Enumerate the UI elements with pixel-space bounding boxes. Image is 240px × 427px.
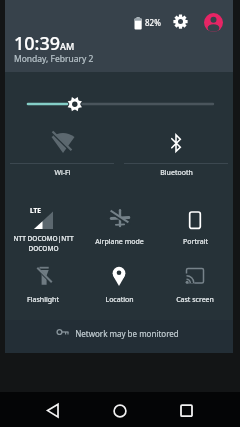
button[interactable] bbox=[157, 190, 233, 262]
button[interactable] bbox=[157, 262, 233, 317]
staticText: Wi-Fi bbox=[54, 168, 71, 178]
button[interactable] bbox=[202, 12, 226, 36]
button[interactable] bbox=[81, 262, 157, 317]
staticText: 10:39 bbox=[14, 31, 61, 56]
button[interactable] bbox=[119, 128, 233, 185]
staticText: LTE bbox=[30, 206, 41, 215]
staticText: Bluetooth bbox=[160, 168, 193, 178]
staticText: Airplane mode bbox=[95, 237, 144, 247]
button[interactable] bbox=[81, 190, 157, 262]
button[interactable] bbox=[20, 92, 220, 116]
staticText: Network may be monitored bbox=[75, 328, 179, 339]
button[interactable] bbox=[5, 128, 119, 185]
staticText: 82% bbox=[145, 17, 161, 28]
staticText: AM bbox=[60, 40, 75, 52]
staticText: Cast screen bbox=[176, 295, 214, 305]
button[interactable] bbox=[5, 190, 81, 262]
staticText: Location bbox=[105, 295, 134, 305]
button[interactable] bbox=[38, 396, 68, 426]
button[interactable] bbox=[170, 10, 192, 36]
button[interactable] bbox=[5, 262, 81, 317]
button[interactable] bbox=[171, 396, 201, 426]
staticText: Monday, February 2 bbox=[14, 53, 94, 65]
staticText: Flashlight bbox=[27, 295, 59, 305]
staticText: Portrait bbox=[183, 237, 208, 247]
staticText: NTT DOCOMO|NTT DOCOMO bbox=[13, 234, 74, 253]
button[interactable] bbox=[105, 396, 135, 426]
button[interactable] bbox=[5, 320, 233, 353]
